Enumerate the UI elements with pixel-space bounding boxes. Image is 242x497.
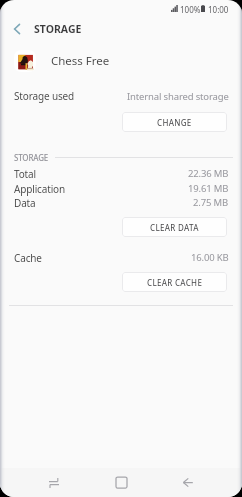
staticText: STORAGE [14, 152, 49, 163]
staticText: STORAGE [34, 22, 82, 36]
staticText: Cache [14, 251, 42, 265]
staticText: 100% [180, 4, 201, 15]
button[interactable]: Home [101, 468, 141, 497]
staticText: 16.00 KB [191, 251, 229, 264]
staticText: 2.75 MB [193, 196, 229, 209]
staticText: Application [14, 182, 66, 196]
button[interactable]: CLEAR DATA [122, 217, 227, 237]
staticText: 22.36 MB [188, 167, 229, 180]
staticText: Storage used [14, 89, 75, 103]
staticText: CLEAR CACHE [147, 277, 203, 288]
staticText: Chess Free [51, 53, 110, 69]
button[interactable]: Recents [34, 468, 74, 497]
staticText: 10:00 [208, 4, 229, 15]
staticText: CHANGE [157, 117, 192, 128]
staticText: Data [14, 196, 36, 210]
staticText: CLEAR DATA [150, 222, 199, 233]
staticText: Total [14, 167, 36, 181]
staticText: Internal shared storage [127, 90, 229, 103]
button[interactable]: Back [168, 468, 208, 497]
button[interactable]: CLEAR CACHE [122, 272, 227, 292]
button[interactable]: Back [6, 18, 27, 39]
button[interactable]: CHANGE [122, 112, 227, 132]
staticText: 19.61 MB [188, 182, 229, 195]
